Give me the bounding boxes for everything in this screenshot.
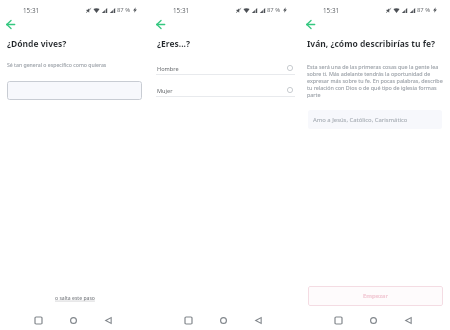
staticText: 15:31 xyxy=(23,6,40,15)
button[interactable]: Back xyxy=(1,15,19,33)
staticText: Mujer xyxy=(157,87,173,95)
staticText: 15:31 xyxy=(173,6,190,15)
button[interactable]: Hombre xyxy=(150,53,300,75)
button[interactable]: Back xyxy=(248,310,268,330)
button[interactable]: Recent apps xyxy=(28,310,48,330)
staticText: Esta será una de las primeras cosas que … xyxy=(307,63,443,98)
button[interactable]: Back xyxy=(398,310,418,330)
button[interactable]: Mujer xyxy=(150,75,300,97)
button[interactable]: Back xyxy=(301,15,319,33)
staticText: Iván, ¿cómo describirías tu fe? xyxy=(307,38,436,50)
button[interactable]: Back xyxy=(151,15,169,33)
button[interactable]: Recent apps xyxy=(178,310,198,330)
staticText: ¿Eres...? xyxy=(157,38,191,50)
button[interactable]: Amo a Jesús, Católico, Carismático xyxy=(308,110,442,129)
button[interactable]: Empezar xyxy=(308,286,443,306)
button[interactable]: Home xyxy=(213,310,233,330)
staticText: Sé tan general o específico como quieras xyxy=(7,61,107,68)
staticText: ¿Dónde vives? xyxy=(7,38,67,50)
button[interactable]: Home xyxy=(63,310,83,330)
button[interactable] xyxy=(7,81,142,100)
staticText: Empezar xyxy=(363,292,388,300)
button[interactable]: Recent apps xyxy=(328,310,348,330)
button[interactable]: Back xyxy=(98,310,118,330)
staticText: 87 % xyxy=(267,6,281,14)
button[interactable]: o salta este paso xyxy=(55,295,95,302)
staticText: 15:31 xyxy=(323,6,340,15)
staticText: Hombre xyxy=(157,65,179,73)
staticText: Amo a Jesús, Católico, Carismático xyxy=(313,116,408,124)
staticText: 87 % xyxy=(417,6,431,14)
staticText: 87 % xyxy=(117,6,131,14)
button[interactable]: Home xyxy=(363,310,383,330)
